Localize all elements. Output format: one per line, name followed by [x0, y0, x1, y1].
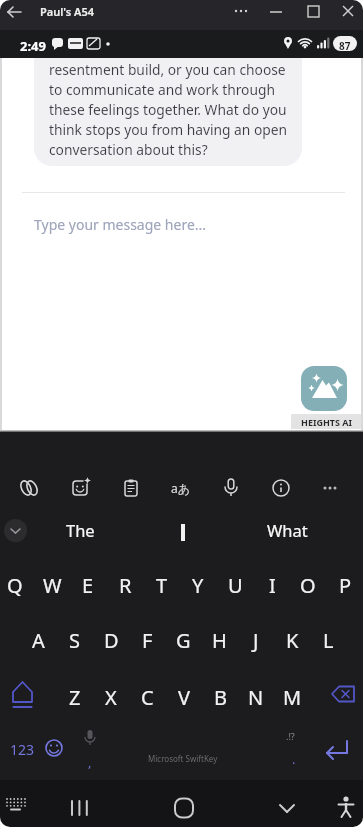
button[interactable]: [4, 2, 26, 24]
button[interactable]: A: [20, 623, 56, 657]
button[interactable]: What: [247, 515, 327, 545]
button[interactable]: Microsoft SwiftKey: [100, 746, 266, 770]
staticText: K: [286, 627, 299, 654]
staticText: V: [178, 684, 190, 711]
staticText: Type your message here...: [34, 215, 207, 234]
button[interactable]: F: [129, 623, 165, 657]
button[interactable]: [38, 732, 70, 766]
button[interactable]: M: [274, 680, 310, 714]
staticText: M: [283, 684, 302, 711]
staticText: The: [66, 519, 95, 541]
button[interactable]: [230, 0, 252, 30]
button[interactable]: Y: [180, 568, 216, 602]
staticText: R: [119, 572, 132, 599]
staticText: A: [32, 627, 45, 654]
button[interactable]: P: [327, 568, 363, 602]
button[interactable]: E: [70, 568, 106, 602]
button[interactable]: [62, 790, 98, 826]
button[interactable]: K: [274, 623, 310, 657]
staticText: Paul's A54: [40, 4, 95, 19]
button[interactable]: [330, 790, 362, 826]
staticText: N: [248, 684, 264, 711]
staticText: B: [214, 684, 227, 711]
button[interactable]: O: [290, 568, 326, 602]
button[interactable]: W: [34, 568, 70, 602]
button[interactable]: L: [310, 623, 346, 657]
button[interactable]: [2, 794, 32, 822]
staticText: F: [142, 627, 153, 654]
button[interactable]: V: [166, 680, 202, 714]
button[interactable]: C: [129, 680, 165, 714]
button[interactable]: U: [217, 568, 253, 602]
button[interactable]: N: [238, 680, 274, 714]
staticText: L: [323, 627, 334, 654]
staticText: X: [105, 684, 117, 711]
button[interactable]: The: [40, 515, 120, 545]
staticText: P: [339, 572, 352, 599]
staticText: 87: [339, 39, 351, 53]
staticText: Y: [192, 572, 204, 599]
button[interactable]: B: [202, 680, 238, 714]
button[interactable]: H: [201, 623, 237, 657]
button[interactable]: [318, 474, 346, 502]
button[interactable]: [115, 472, 147, 504]
button[interactable]: [320, 732, 360, 768]
staticText: 123: [10, 740, 35, 759]
button[interactable]: [4, 676, 42, 718]
staticText: Microsoft SwiftKey: [148, 753, 218, 764]
button[interactable]: Q: [0, 568, 33, 602]
button[interactable]: G: [165, 623, 201, 657]
staticText: G: [176, 627, 191, 654]
staticText: aあ: [171, 480, 191, 496]
button[interactable]: [13, 472, 45, 504]
button[interactable]: [301, 366, 347, 411]
button[interactable]: [264, 0, 288, 30]
button[interactable]: Z: [57, 680, 93, 714]
button[interactable]: [265, 472, 297, 504]
staticText: E: [82, 572, 94, 599]
staticText: O: [300, 572, 316, 599]
button[interactable]: [269, 790, 305, 826]
staticText: J: [253, 627, 259, 654]
staticText: HEIGHTS AI: [301, 416, 353, 428]
button[interactable]: aあ: [165, 472, 197, 504]
staticText: ,: [88, 753, 92, 771]
button[interactable]: I: [254, 568, 290, 602]
staticText: Q: [7, 572, 23, 599]
button[interactable]: X: [93, 680, 129, 714]
button[interactable]: J: [238, 623, 274, 657]
staticText: What: [267, 519, 308, 541]
button[interactable]: [4, 519, 27, 542]
staticText: C: [141, 684, 154, 711]
button[interactable]: [166, 790, 202, 826]
staticText: .: [292, 750, 296, 768]
button[interactable]: [215, 472, 247, 504]
staticText: D: [104, 627, 119, 654]
button[interactable]: 123: [2, 732, 42, 766]
staticText: .!?: [286, 730, 295, 742]
staticText: U: [228, 572, 243, 599]
button[interactable]: Type your message here...: [30, 211, 250, 237]
staticText: Z: [69, 684, 81, 711]
button[interactable]: S: [56, 623, 92, 657]
staticText: I: [269, 572, 276, 599]
button[interactable]: T: [144, 568, 180, 602]
button[interactable]: [324, 678, 362, 716]
staticText: 2:49: [20, 37, 46, 55]
staticText: T: [156, 572, 168, 599]
staticText: S: [69, 627, 80, 654]
button[interactable]: [336, 0, 360, 30]
staticText: W: [43, 572, 62, 599]
staticText: H: [212, 627, 227, 654]
button[interactable]: R: [107, 568, 143, 602]
staticText: resentment build, or you can choose to c…: [49, 60, 288, 159]
button[interactable]: [301, 0, 325, 30]
button[interactable]: D: [93, 623, 129, 657]
button[interactable]: [64, 472, 96, 504]
